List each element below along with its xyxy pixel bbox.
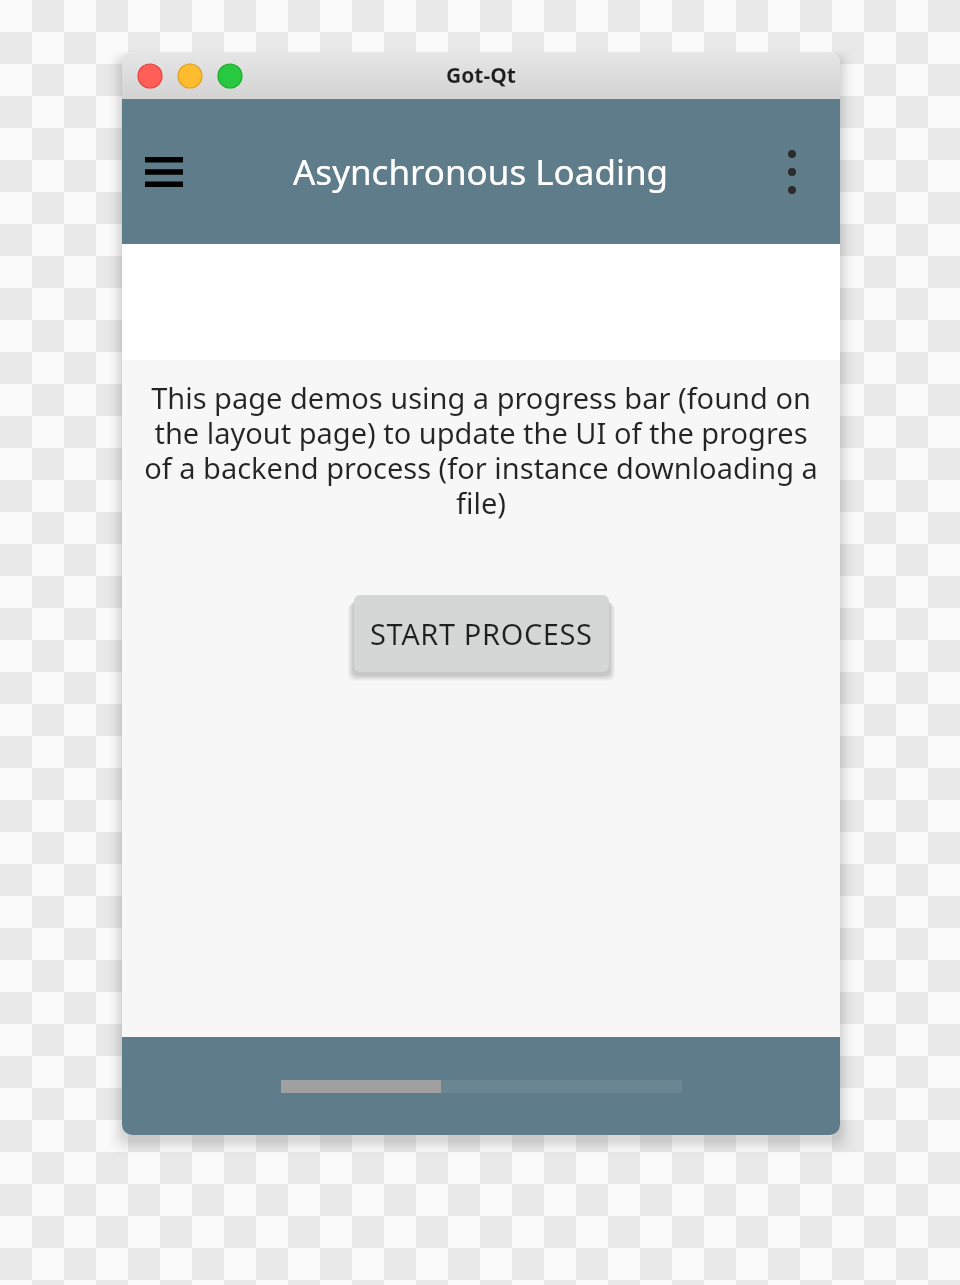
button[interactable]: Minimize xyxy=(178,64,202,88)
button[interactable]: Open navigation menu xyxy=(136,144,192,200)
button[interactable]: Close xyxy=(138,64,162,88)
staticText: Got-Qt xyxy=(446,61,516,90)
button[interactable]: Maximize xyxy=(218,64,242,88)
staticText: This page demos using a progress bar (fo… xyxy=(144,378,818,523)
staticText: Asynchronous Loading xyxy=(293,148,669,196)
staticText: START PROCESS xyxy=(370,614,593,653)
button[interactable]: START PROCESS xyxy=(354,595,609,672)
button[interactable]: More options xyxy=(766,146,818,198)
